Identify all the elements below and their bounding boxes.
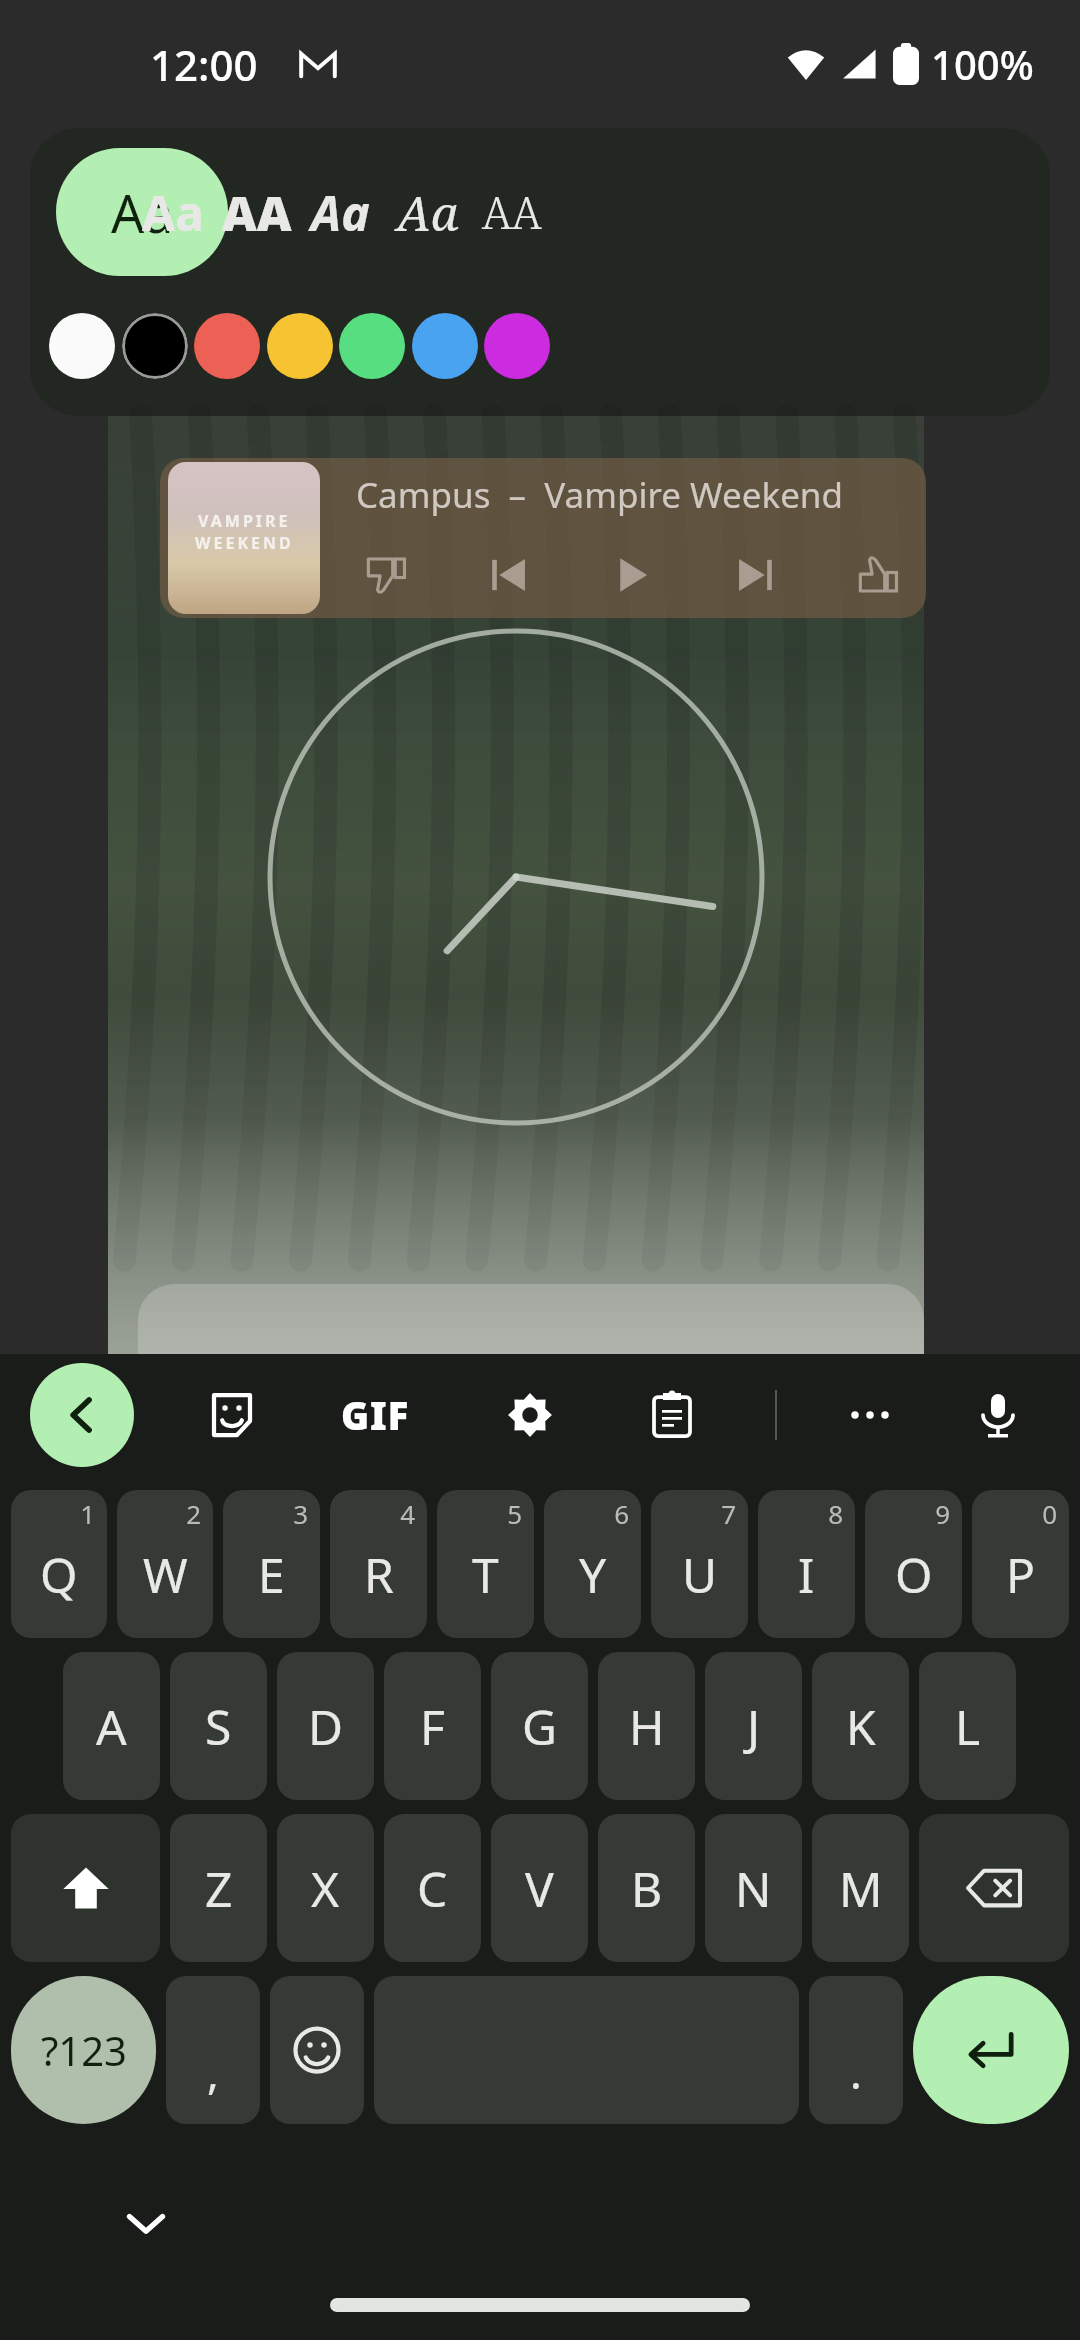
staticText: A	[96, 1694, 127, 1759]
button[interactable]: ?123	[11, 1976, 156, 2124]
button[interactable]: 5	[437, 1490, 534, 1638]
staticText: B	[631, 1856, 663, 1921]
staticText: Aa	[311, 180, 370, 245]
button[interactable]: L	[919, 1652, 1016, 1800]
staticText: 12:00	[150, 36, 258, 93]
button[interactable]: Aa	[117, 148, 229, 276]
button[interactable]: S	[170, 1652, 267, 1800]
button[interactable]: Voice input	[946, 1363, 1050, 1467]
staticText: Campus – Vampire Weekend	[356, 471, 844, 519]
button[interactable]	[469, 298, 565, 394]
staticText: I	[798, 1542, 815, 1607]
button[interactable]: Z	[170, 1814, 267, 1962]
staticText: L	[955, 1694, 981, 1759]
button[interactable]: Settings	[478, 1363, 582, 1467]
button[interactable]: GIF	[320, 1363, 430, 1467]
button[interactable]	[34, 298, 130, 394]
button[interactable]: Play	[602, 545, 662, 605]
staticText: 100%	[931, 37, 1034, 91]
button[interactable]: 9	[865, 1490, 962, 1638]
button[interactable]: A	[63, 1652, 160, 1800]
staticText: GIF	[341, 1389, 410, 1441]
staticText: M	[839, 1856, 883, 1921]
staticText: Aa	[142, 180, 204, 245]
button[interactable]: M	[812, 1814, 909, 1962]
button[interactable]: AA	[201, 148, 313, 276]
button[interactable]: Thumbs down	[356, 545, 416, 605]
button[interactable]: 4	[330, 1490, 427, 1638]
staticText: C	[417, 1856, 448, 1921]
button[interactable]: 7	[651, 1490, 748, 1638]
button[interactable]: X	[277, 1814, 374, 1962]
button[interactable]: K	[812, 1652, 909, 1800]
staticText: T	[472, 1542, 499, 1607]
button[interactable]: 2	[117, 1490, 213, 1638]
button[interactable]: Emoji	[270, 1976, 364, 2124]
button[interactable]: Aa	[372, 148, 484, 276]
staticText: R	[364, 1542, 394, 1607]
button[interactable]: Backspace	[919, 1814, 1069, 1962]
staticText: F	[420, 1694, 445, 1759]
staticText: V	[525, 1856, 554, 1921]
button[interactable]: V	[491, 1814, 588, 1962]
staticText: 7	[721, 1496, 736, 1531]
button[interactable]: Stickers	[180, 1363, 284, 1467]
staticText: E	[258, 1542, 285, 1607]
staticText: 4	[400, 1496, 415, 1531]
staticText: 5	[507, 1496, 522, 1531]
button[interactable]	[179, 298, 275, 394]
staticText: Aa	[111, 177, 174, 248]
staticText: ,	[207, 2042, 219, 2102]
button[interactable]: Aa	[56, 148, 228, 276]
button[interactable]: 0	[972, 1490, 1069, 1638]
staticText: 0	[1042, 1496, 1057, 1531]
staticText: 6	[614, 1496, 629, 1531]
staticText: N	[735, 1856, 772, 1921]
button[interactable]: B	[598, 1814, 695, 1962]
button[interactable]: ,	[166, 1976, 260, 2124]
button[interactable]: C	[384, 1814, 481, 1962]
staticText: 1	[80, 1496, 95, 1531]
button[interactable]: AA	[456, 148, 568, 276]
button[interactable]	[107, 298, 203, 394]
button[interactable]: F	[384, 1652, 481, 1800]
staticText: 3	[293, 1496, 308, 1531]
staticText: 2	[186, 1496, 201, 1531]
button[interactable]: 3	[223, 1490, 320, 1638]
button[interactable]: D	[277, 1652, 374, 1800]
button[interactable]: Previous	[479, 545, 539, 605]
staticText: Q	[40, 1542, 78, 1607]
button[interactable]: J	[705, 1652, 802, 1800]
button[interactable]: G	[491, 1652, 588, 1800]
button[interactable]: N	[705, 1814, 802, 1962]
button[interactable]: Enter	[913, 1976, 1069, 2124]
button[interactable]: .	[809, 1976, 903, 2124]
staticText: Aa	[397, 180, 459, 245]
button[interactable]: More options	[818, 1363, 922, 1467]
button[interactable]: 6	[544, 1490, 641, 1638]
staticText: 9	[935, 1496, 950, 1531]
button[interactable]: Next	[725, 545, 785, 605]
button[interactable]	[324, 298, 420, 394]
button[interactable]: VAMPIRE	[160, 458, 926, 618]
staticText: P	[1006, 1542, 1036, 1607]
button[interactable]: Shift	[11, 1814, 160, 1962]
staticText: K	[846, 1694, 876, 1759]
staticText: G	[522, 1694, 557, 1759]
button[interactable]: H	[598, 1652, 695, 1800]
staticText: WEEKEND	[195, 532, 294, 554]
button[interactable]: Thumbs up	[848, 545, 908, 605]
staticText: D	[308, 1694, 344, 1759]
staticText: 8	[828, 1496, 843, 1531]
button[interactable]: Aa	[284, 148, 396, 276]
button[interactable]: 8	[758, 1490, 855, 1638]
button[interactable]: 1	[11, 1490, 107, 1638]
button[interactable]	[252, 298, 348, 394]
staticText: AA	[222, 180, 292, 245]
button[interactable]	[397, 298, 493, 394]
button[interactable]: Hide keyboard	[98, 2174, 194, 2270]
staticText: Y	[579, 1542, 607, 1607]
button[interactable]: Back	[30, 1363, 134, 1467]
button[interactable]: Clipboard	[620, 1363, 724, 1467]
